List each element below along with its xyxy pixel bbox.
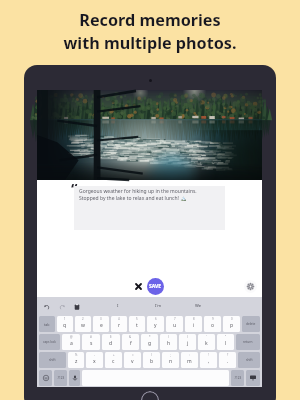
staticText: w <box>81 322 85 329</box>
staticText: h <box>167 340 171 347</box>
staticText: 3 <box>100 317 102 321</box>
staticText: . <box>227 358 229 365</box>
button[interactable]: Voice input <box>69 370 80 386</box>
button[interactable]: 7 <box>166 316 183 332</box>
staticText: with multiple photos. <box>63 32 237 54</box>
staticText: f <box>130 340 132 347</box>
button[interactable]: ) <box>179 334 196 350</box>
button[interactable]: 0 <box>223 316 240 332</box>
staticText: Gorgeous weather for hiking up in the mo… <box>79 188 197 195</box>
staticText: 9 <box>212 317 214 321</box>
button[interactable]: Emoji <box>39 370 52 386</box>
staticText: / <box>151 353 153 357</box>
button[interactable]: I'm <box>138 297 178 315</box>
button[interactable]: + <box>105 352 122 368</box>
button[interactable]: = <box>124 352 141 368</box>
button[interactable]: # <box>82 334 100 350</box>
staticText: u <box>173 322 177 329</box>
button[interactable]: / <box>143 352 160 368</box>
staticText: ( <box>168 335 169 339</box>
staticText: 6 <box>155 317 157 321</box>
button[interactable]: & <box>122 334 139 350</box>
staticText: 0 <box>231 317 233 321</box>
staticText: o <box>211 322 215 329</box>
staticText: Stopped by the lake to relax and eat lun… <box>79 195 187 202</box>
button[interactable]: shift <box>39 352 66 368</box>
button[interactable]: 2 <box>75 316 91 332</box>
button[interactable]: shift <box>238 352 260 368</box>
staticText: shift <box>49 358 56 362</box>
staticText: 2 <box>82 317 84 321</box>
staticText: r <box>118 322 121 329</box>
button[interactable]: ? <box>219 352 236 368</box>
staticText: z <box>75 358 78 365</box>
button[interactable]: Redo <box>56 301 67 312</box>
staticText: shift <box>246 358 253 362</box>
staticText: 4 <box>118 317 120 321</box>
button[interactable]: Gorgeous weather for hiking up in the mo… <box>74 186 225 230</box>
staticText: ; <box>170 353 171 357</box>
button[interactable]: " <box>217 334 234 350</box>
staticText: 8 <box>193 317 195 321</box>
button[interactable]: SAVE <box>147 278 164 295</box>
staticText: delete <box>246 322 256 326</box>
staticText: a <box>70 340 73 347</box>
button[interactable]: .?123 <box>231 370 244 386</box>
staticText: d <box>109 340 113 347</box>
staticText: q <box>63 322 67 329</box>
button[interactable]: 5 <box>129 316 145 332</box>
button[interactable]: 1 <box>57 316 73 332</box>
staticText: 7 <box>174 317 176 321</box>
staticText: x <box>93 358 96 365</box>
button[interactable]: Paste <box>71 301 82 312</box>
button[interactable]: delete <box>242 316 260 332</box>
staticText: " <box>225 335 227 339</box>
button[interactable]: Settings <box>244 280 257 293</box>
button[interactable]: return <box>236 334 260 350</box>
staticText: k <box>205 340 208 347</box>
button[interactable]: ' <box>198 334 215 350</box>
button[interactable]: * <box>141 334 158 350</box>
button[interactable]: - <box>86 352 103 368</box>
button[interactable]: ( <box>160 334 177 350</box>
button[interactable]: 8 <box>185 316 202 332</box>
button[interactable]: 3 <box>93 316 109 332</box>
staticText: “ <box>71 179 78 197</box>
button[interactable]: : <box>181 352 198 368</box>
button[interactable]: tab <box>39 316 55 332</box>
staticText: p <box>230 322 234 329</box>
button[interactable]: Undo <box>41 301 52 312</box>
button[interactable]: Hide keyboard <box>246 370 260 386</box>
staticText: : <box>189 353 190 357</box>
staticText: SAVE <box>149 283 162 290</box>
button[interactable]: .?123 <box>54 370 67 386</box>
button[interactable]: % <box>68 352 84 368</box>
button[interactable]: ! <box>200 352 217 368</box>
button[interactable]: ; <box>162 352 179 368</box>
staticText: Record memories <box>79 9 221 31</box>
button[interactable]: Close <box>132 280 145 293</box>
staticText: , <box>208 358 210 365</box>
staticText: m <box>187 358 192 365</box>
button[interactable]: 6 <box>147 316 164 332</box>
button[interactable]: We <box>178 297 218 315</box>
staticText: j <box>187 340 189 347</box>
staticText: y <box>154 322 157 329</box>
button[interactable]: $ <box>102 334 120 350</box>
staticText: ? <box>227 353 229 357</box>
staticText: .?123 <box>57 376 65 380</box>
button[interactable]: @ <box>62 334 80 350</box>
button[interactable]: 4 <box>111 316 127 332</box>
staticText: # <box>90 335 92 339</box>
staticText: v <box>131 358 134 365</box>
button[interactable]: Home <box>141 391 159 400</box>
staticText: caps lock <box>43 340 56 344</box>
staticText: c <box>112 358 115 365</box>
staticText: I <box>117 303 119 309</box>
staticText: t <box>136 322 138 329</box>
staticText: .?123 <box>234 376 242 380</box>
button[interactable]: I <box>98 297 138 315</box>
button[interactable]: 9 <box>204 316 221 332</box>
button[interactable]: caps lock <box>39 334 60 350</box>
